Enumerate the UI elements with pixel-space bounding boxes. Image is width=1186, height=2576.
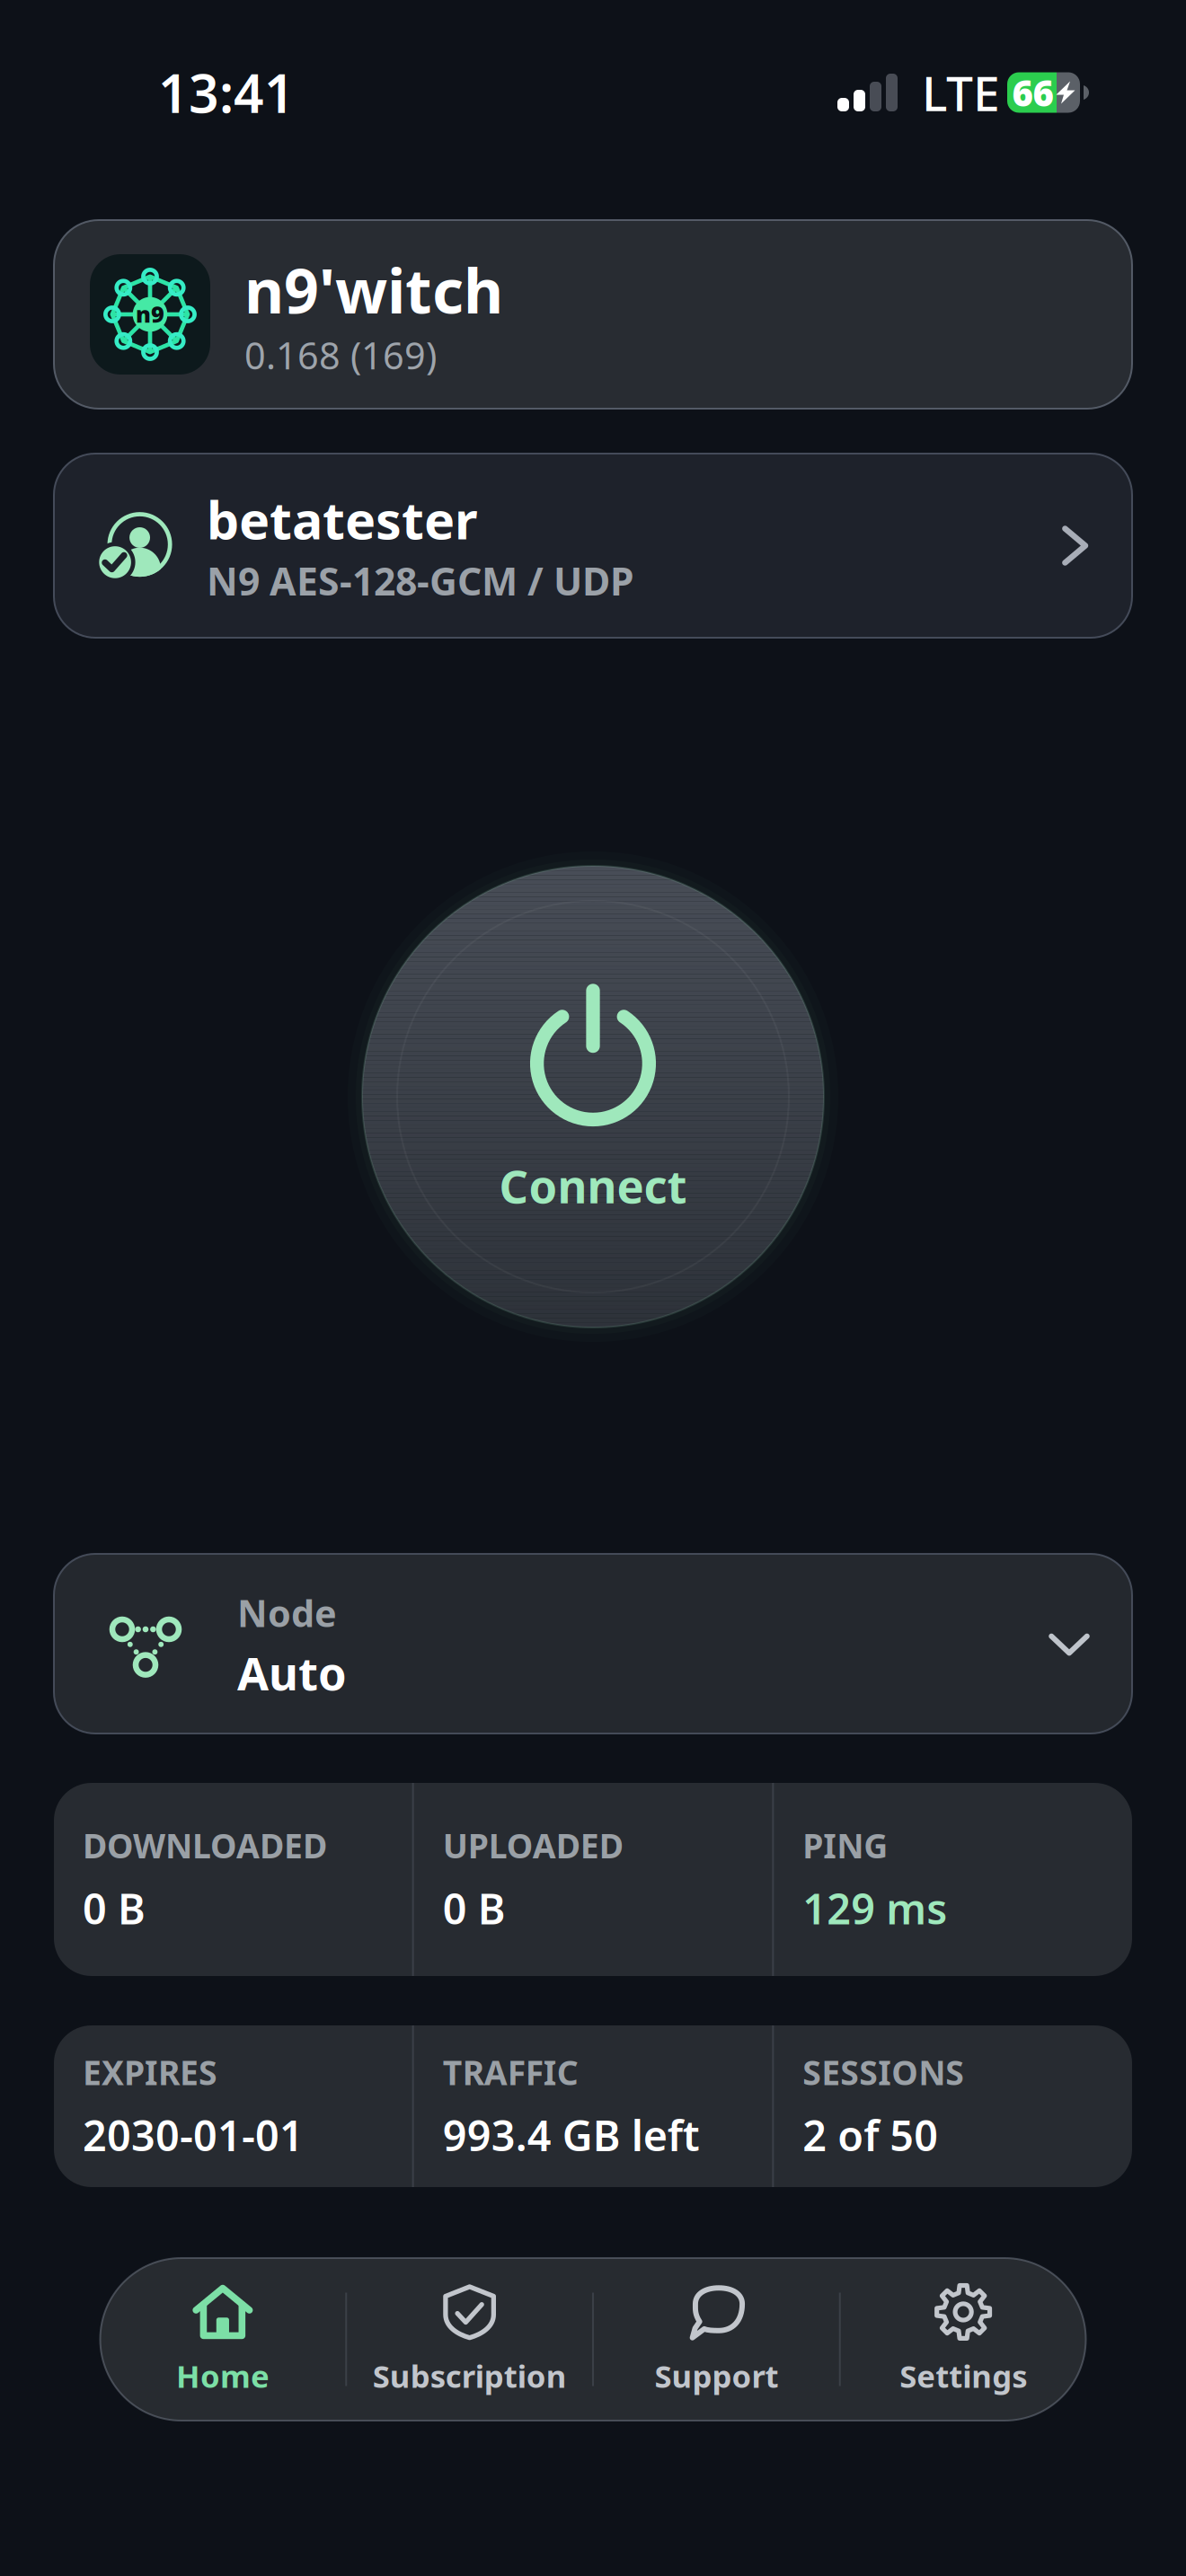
staticText: 0 B [83,1880,146,1936]
staticText: 2030-01-01 [83,2107,304,2163]
staticText: n9 [136,299,164,329]
button[interactable]: Connect [350,854,836,1339]
staticText: TRAFFIC [443,2050,578,2094]
staticText: 13:41 [158,57,295,127]
staticText: betatester [207,485,478,553]
staticText: EXPIRES [83,2050,217,2094]
staticText: 0 B [443,1880,506,1936]
staticText: DOWNLOADED [83,1823,327,1868]
staticText: 0.168 (169) [244,330,437,380]
staticText: 129 ms [803,1880,947,1936]
staticText: Settings [899,2355,1027,2396]
staticText: n9'witch [244,249,503,330]
button[interactable]: Node [54,1554,1132,1734]
staticText: 66 [1012,69,1053,116]
button[interactable]: Subscription [347,2258,592,2420]
staticText: UPLOADED [443,1823,623,1868]
staticText: 2 of 50 [803,2107,938,2163]
staticText: N9 AES-128-GCM / UDP [207,555,633,606]
staticText: Node [237,1588,337,1637]
staticText: PING [803,1823,888,1868]
staticText: SESSIONS [803,2050,964,2094]
button[interactable]: Home [100,2258,345,2420]
staticText: Support [654,2355,778,2396]
staticText: Subscription [373,2355,567,2396]
staticText: Home [176,2355,269,2396]
staticText: 993.4 GB left [443,2107,700,2163]
staticText: LTE [922,61,1000,124]
button[interactable]: Settings [841,2258,1086,2420]
staticText: Connect [499,1155,687,1216]
button[interactable]: betatester [54,454,1132,638]
button[interactable]: Support [594,2258,839,2420]
staticText: Auto [237,1643,347,1703]
